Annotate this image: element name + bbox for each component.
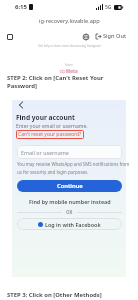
staticText: Continue — [57, 182, 83, 190]
staticText: 5G — [105, 4, 112, 11]
staticText: STEP 3: Click on [Other Methods] — [7, 291, 102, 299]
staticText: STEP 2: Click on [Can't Reset Your — [7, 74, 104, 82]
button[interactable]: Email or username — [17, 145, 122, 159]
staticText: Get help or learn more about using Insta… — [38, 44, 101, 48]
staticText: Find by mobile number instead — [29, 198, 111, 205]
button[interactable]: Can't reset your password? — [16, 130, 84, 139]
button[interactable]: Sign Out — [95, 30, 128, 42]
staticText: ig-recovery.lovable.app — [39, 17, 100, 25]
staticText: Sign Out — [103, 32, 127, 40]
button[interactable]: Tabs — [5, 32, 14, 41]
staticText: Enter your email or username. — [16, 123, 88, 130]
staticText: Find your account — [16, 113, 75, 122]
staticText: Can't reset your password? — [18, 131, 82, 138]
staticText: 6:15 — [15, 3, 27, 11]
staticText: Meta — [66, 68, 78, 74]
button[interactable]: Back — [15, 99, 27, 111]
button[interactable]: Log in with Facebook — [17, 218, 122, 230]
staticText: Email or username — [21, 149, 69, 156]
staticText: from — [65, 62, 73, 67]
staticText: Log in with Facebook — [45, 221, 101, 228]
staticText: OR — [66, 209, 73, 215]
staticText: Password] — [7, 82, 38, 90]
button[interactable]: Continue — [17, 180, 122, 192]
button[interactable]: Find by mobile number instead — [17, 197, 122, 206]
staticText: You may receive WhatsApp and SMS notific… — [17, 161, 130, 167]
staticText: us for security and login purposes. — [17, 169, 89, 175]
button[interactable]: Language — [81, 32, 90, 41]
